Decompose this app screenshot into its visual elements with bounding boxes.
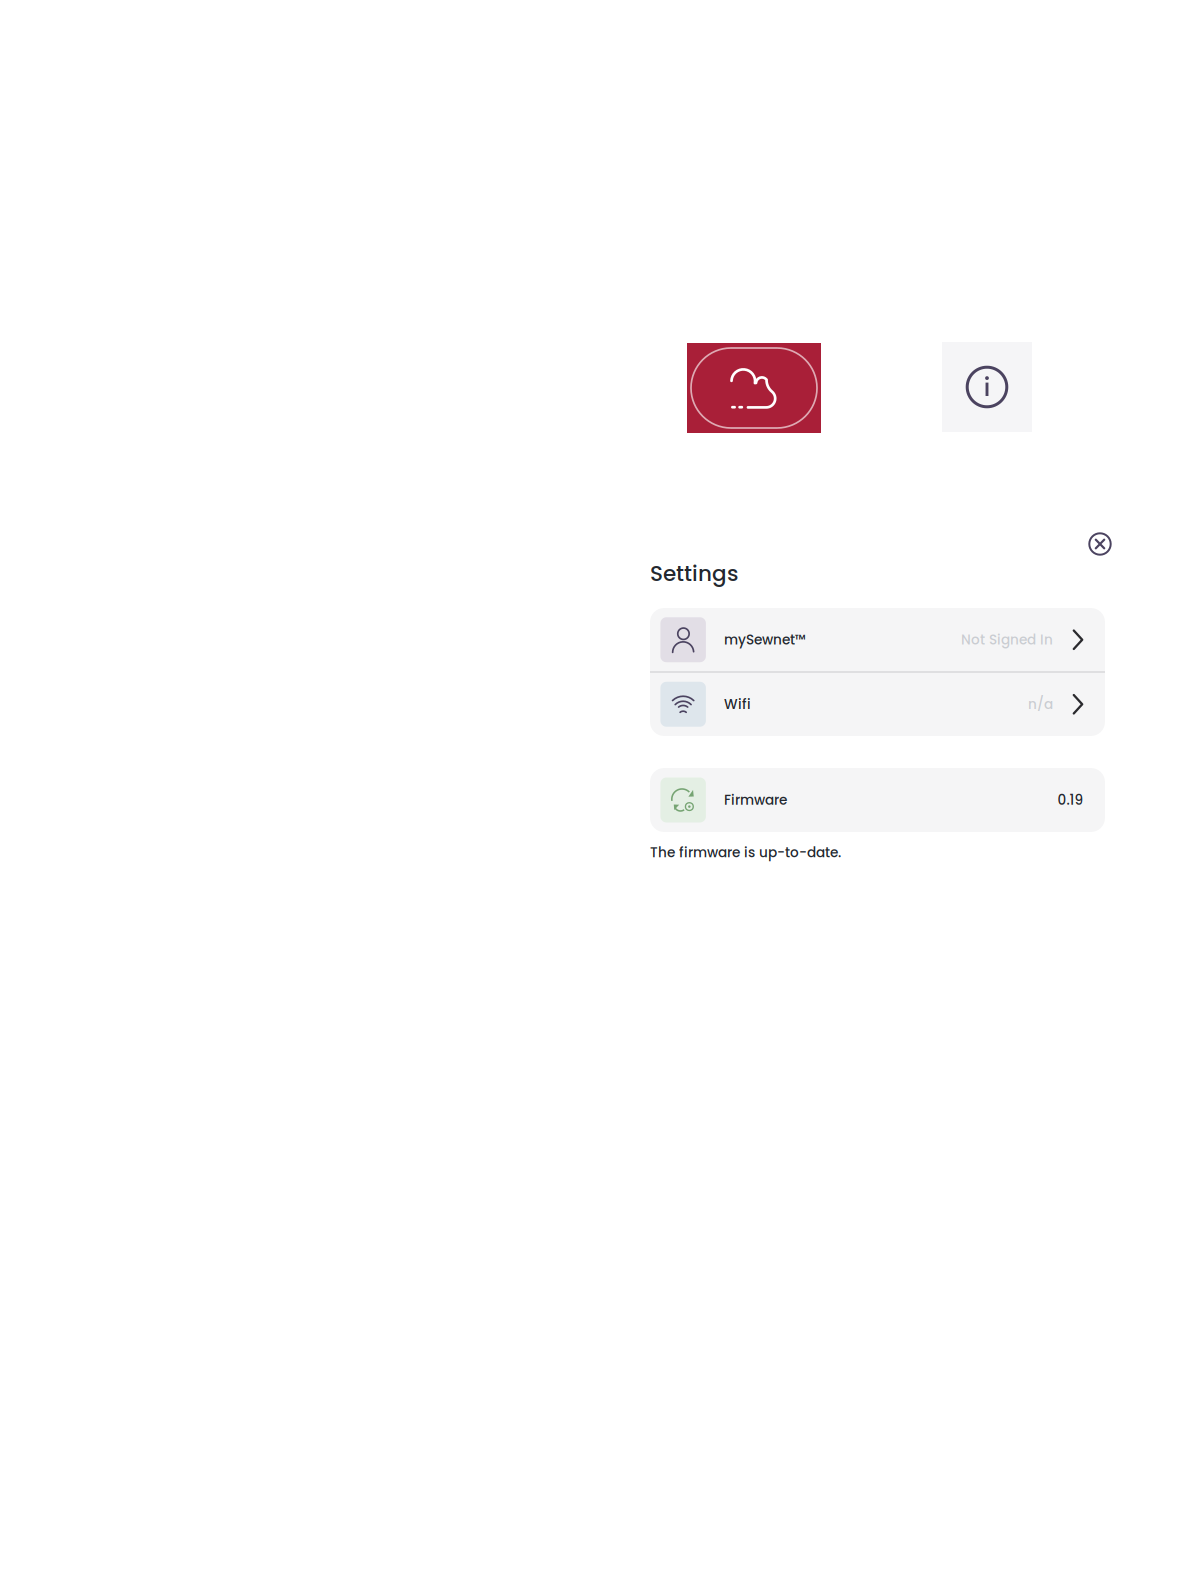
- staticText: mySewnet™: [724, 630, 806, 649]
- staticText: 0.19: [1057, 790, 1083, 809]
- staticText: The firmware is up-to-date.: [650, 843, 841, 862]
- staticText: n/a: [1028, 695, 1053, 714]
- button[interactable]: Firmware: [650, 768, 1105, 832]
- button[interactable]: mySewnet™: [650, 608, 1105, 671]
- staticText: Firmware: [724, 790, 787, 809]
- button[interactable]: Close: [1083, 527, 1117, 561]
- staticText: Wifi: [724, 695, 751, 714]
- button[interactable]: Cloud: [687, 343, 821, 433]
- button[interactable]: Wifi: [650, 672, 1105, 736]
- staticText: Not Signed In: [961, 630, 1053, 649]
- staticText: Settings: [650, 558, 738, 589]
- button[interactable]: Information: [942, 342, 1032, 432]
